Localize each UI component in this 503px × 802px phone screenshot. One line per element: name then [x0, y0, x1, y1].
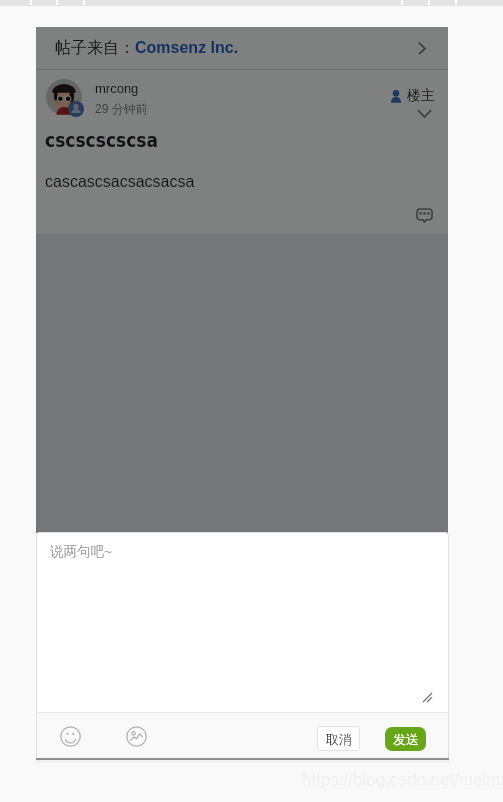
- staticText: 发送: [393, 731, 419, 747]
- staticText: 29 分钟前: [95, 101, 148, 116]
- staticText: cscscscscsa: [45, 129, 159, 151]
- button[interactable]: Comment: [416, 208, 433, 223]
- staticText: cascascsacsacsacsa: [45, 173, 195, 191]
- staticText: 说两句吧~: [50, 543, 112, 560]
- button[interactable]: 说两句吧~: [36, 532, 449, 712]
- button[interactable]: Expand: [417, 109, 432, 118]
- button[interactable]: Emoji: [60, 726, 81, 747]
- other: Open source site: [418, 42, 426, 55]
- staticText: 取消: [326, 731, 352, 747]
- button[interactable]: Add image: [126, 726, 147, 747]
- button[interactable]: 帖子来自：Comsenz Inc.: [36, 27, 448, 69]
- button[interactable]: 发送: [385, 727, 426, 751]
- button[interactable]: 取消: [317, 726, 360, 751]
- staticText: 帖子来自：Comsenz Inc.: [55, 38, 239, 58]
- staticText: 楼主: [407, 87, 435, 105]
- staticText: mrcong: [95, 81, 139, 96]
- button[interactable]: mrcong avatar: [46, 79, 84, 117]
